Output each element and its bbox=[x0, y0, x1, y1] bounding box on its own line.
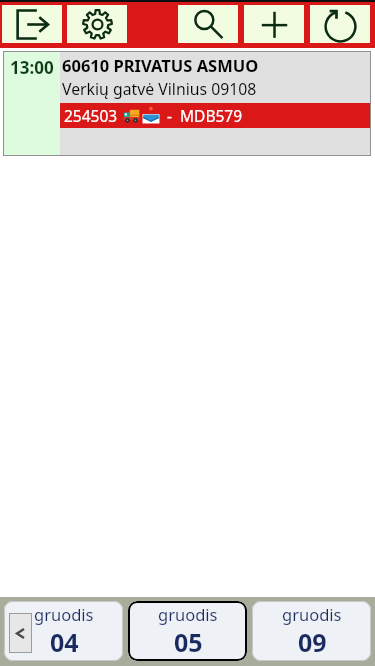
staticText: gruodis bbox=[34, 603, 94, 625]
button[interactable]: 13:00 bbox=[3, 51, 371, 156]
button[interactable]: Add bbox=[244, 5, 304, 43]
button[interactable]: gruodis bbox=[4, 601, 123, 661]
staticText: gruodis bbox=[158, 603, 218, 625]
staticText: 254503 bbox=[64, 105, 118, 126]
button[interactable]: Logout bbox=[2, 5, 62, 43]
staticText: 13:00 bbox=[10, 56, 54, 79]
staticText: 09 bbox=[298, 625, 327, 659]
staticText: - MDB579 bbox=[167, 105, 243, 126]
staticText: 05 bbox=[174, 625, 203, 659]
staticText: 04 bbox=[50, 625, 79, 659]
staticText: 60610 PRIVATUS ASMUO bbox=[62, 54, 259, 76]
button[interactable]: Settings bbox=[67, 5, 127, 43]
button[interactable]: Previous day bbox=[9, 613, 32, 653]
staticText: gruodis bbox=[282, 603, 342, 625]
button[interactable]: Refresh bbox=[310, 5, 370, 43]
staticText: Verkių gatvė Vilnius 09108 bbox=[62, 78, 257, 100]
button[interactable]: gruodis bbox=[128, 601, 247, 661]
button[interactable]: gruodis bbox=[252, 601, 371, 661]
button[interactable]: Search bbox=[178, 5, 238, 43]
